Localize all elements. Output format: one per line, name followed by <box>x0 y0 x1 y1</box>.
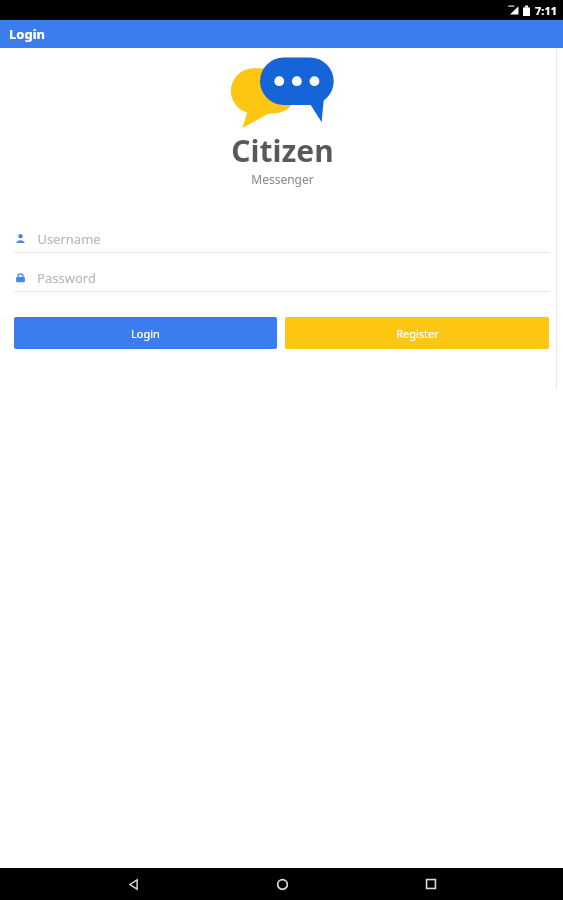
staticText: Messenger <box>251 171 314 187</box>
button[interactable]: Password <box>14 264 549 292</box>
button[interactable]: Login <box>14 317 277 349</box>
staticText: Username <box>37 230 101 248</box>
button[interactable]: Back <box>116 868 150 900</box>
staticText: Password <box>37 269 96 287</box>
staticText: Citizen <box>231 130 334 171</box>
button[interactable]: Register <box>285 317 549 349</box>
staticText: Register <box>396 326 439 341</box>
button[interactable]: Home <box>265 868 299 900</box>
staticText: Login <box>131 326 160 341</box>
button[interactable]: Username <box>14 225 549 253</box>
staticText: Login <box>9 25 45 43</box>
staticText: 7:11 <box>535 3 557 18</box>
button[interactable]: Recent apps <box>414 868 448 900</box>
